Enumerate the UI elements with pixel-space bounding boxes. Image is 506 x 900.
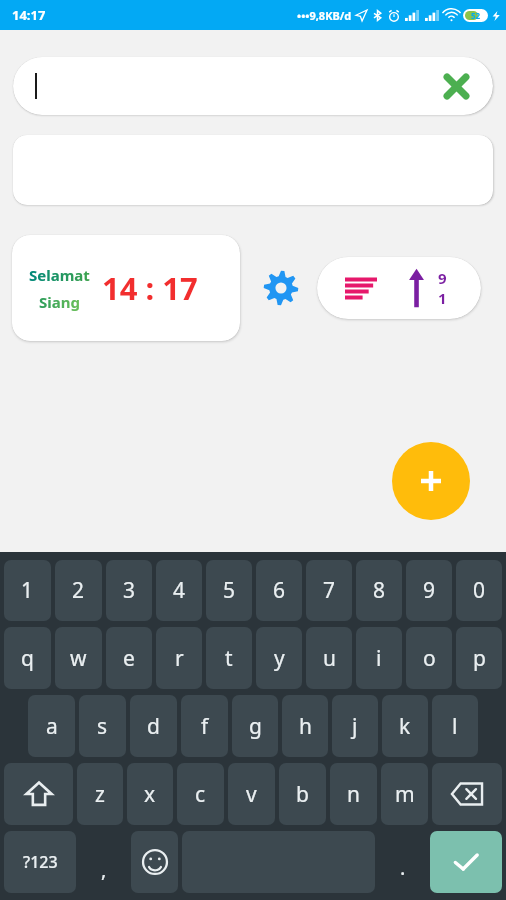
staticText: f: [201, 712, 209, 741]
button[interactable]: Selamat: [12, 235, 240, 341]
button[interactable]: .: [379, 831, 426, 893]
button[interactable]: 8: [356, 560, 402, 621]
button[interactable]: r: [156, 627, 202, 689]
button[interactable]: Emoji: [131, 831, 178, 893]
button[interactable]: Enter: [430, 831, 502, 893]
button[interactable]: Shift: [4, 763, 73, 825]
staticText: q: [21, 644, 34, 673]
button[interactable]: t: [206, 627, 252, 689]
staticText: a: [46, 712, 58, 741]
staticText: r: [175, 644, 184, 673]
staticText: 1: [21, 576, 34, 605]
button[interactable]: g: [232, 695, 278, 757]
staticText: 52: [471, 10, 481, 21]
button[interactable]: f: [181, 695, 228, 757]
button[interactable]: 0: [456, 560, 502, 621]
staticText: k: [399, 712, 411, 741]
staticText: n: [347, 780, 360, 809]
staticText: h: [299, 712, 312, 741]
button[interactable]: j: [332, 695, 378, 757]
button[interactable]: Settings: [258, 265, 304, 311]
button[interactable]: 5: [206, 560, 252, 621]
staticText: d: [147, 712, 160, 741]
button[interactable]: Backspace: [432, 763, 502, 825]
staticText: l: [452, 712, 458, 741]
staticText: 3: [123, 576, 136, 605]
staticText: o: [423, 644, 436, 673]
staticText: p: [473, 644, 486, 673]
staticText: ,: [101, 856, 107, 883]
button[interactable]: q: [4, 627, 51, 689]
button[interactable]: i: [356, 627, 402, 689]
button[interactable]: x: [127, 763, 173, 825]
button[interactable]: d: [130, 695, 177, 757]
button[interactable]: 3: [106, 560, 152, 621]
button[interactable]: 6: [256, 560, 302, 621]
staticText: 7: [323, 576, 336, 605]
staticText: c: [195, 780, 206, 809]
staticText: m: [395, 780, 415, 809]
staticText: 1: [438, 288, 447, 308]
button[interactable]: 2: [55, 560, 102, 621]
staticText: Selamat: [29, 265, 90, 285]
staticText: 8: [373, 576, 386, 605]
staticText: 4: [173, 576, 186, 605]
button[interactable]: v: [228, 763, 275, 825]
staticText: g: [249, 712, 262, 741]
staticText: w: [70, 644, 87, 673]
button[interactable]: 1: [4, 560, 51, 621]
button[interactable]: z: [77, 763, 123, 825]
button[interactable]: Clear text: [437, 67, 475, 105]
staticText: 9: [438, 268, 447, 288]
staticText: s: [97, 712, 108, 741]
staticText: t: [225, 644, 233, 673]
button[interactable]: y: [256, 627, 302, 689]
button[interactable]: Sort order: [317, 257, 481, 319]
button[interactable]: Clear text: [13, 57, 493, 115]
button[interactable]: u: [306, 627, 352, 689]
button[interactable]: ,: [80, 831, 127, 893]
staticText: 2: [72, 576, 85, 605]
button[interactable]: 7: [306, 560, 352, 621]
button[interactable]: n: [330, 763, 377, 825]
staticText: z: [95, 780, 105, 809]
button[interactable]: m: [381, 763, 428, 825]
staticText: .: [400, 854, 406, 881]
staticText: 14 : 17: [102, 267, 198, 309]
staticText: 0: [473, 576, 486, 605]
button[interactable]: p: [456, 627, 502, 689]
button[interactable]: k: [382, 695, 428, 757]
staticText: j: [352, 712, 358, 741]
button[interactable]: e: [106, 627, 152, 689]
button[interactable]: 4: [156, 560, 202, 621]
staticText: 6: [273, 576, 286, 605]
button[interactable]: c: [177, 763, 224, 825]
button[interactable]: w: [55, 627, 102, 689]
button[interactable]: l: [432, 695, 478, 757]
button[interactable]: s: [79, 695, 126, 757]
button[interactable]: o: [406, 627, 452, 689]
button[interactable]: b: [279, 763, 326, 825]
staticText: u: [323, 644, 336, 673]
staticText: ?123: [23, 851, 58, 873]
staticText: v: [246, 780, 257, 809]
staticText: 14:17: [12, 6, 46, 24]
button[interactable]: 9: [406, 560, 452, 621]
button[interactable]: ?123: [4, 831, 76, 893]
staticText: y: [274, 644, 285, 673]
staticText: Siang: [39, 292, 80, 312]
button[interactable]: Add: [392, 442, 470, 520]
staticText: b: [296, 780, 309, 809]
staticText: x: [144, 780, 156, 809]
staticText: i: [376, 644, 382, 673]
button[interactable]: h: [282, 695, 328, 757]
staticText: •••9,8KB/d: [297, 8, 352, 23]
staticText: e: [123, 644, 135, 673]
staticText: 5: [223, 576, 236, 605]
button[interactable]: a: [28, 695, 75, 757]
staticText: 9: [423, 576, 436, 605]
